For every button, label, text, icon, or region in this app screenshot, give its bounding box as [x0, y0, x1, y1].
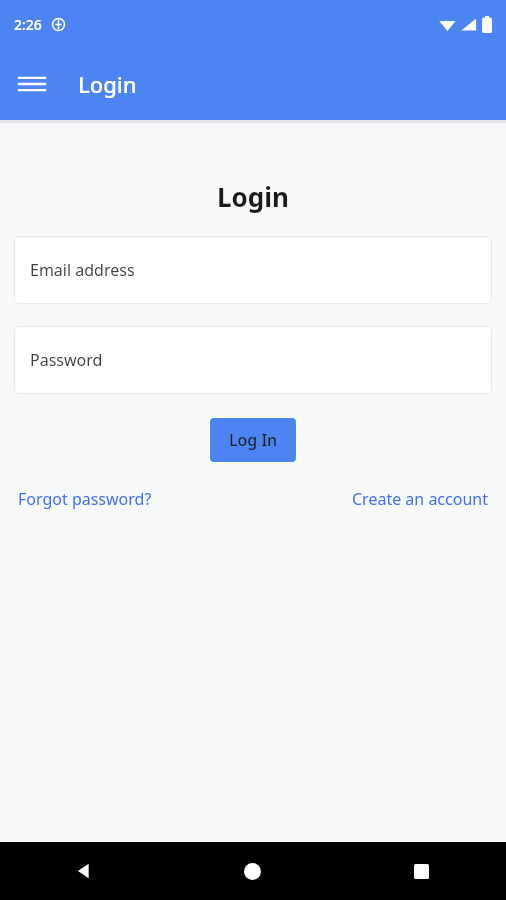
button[interactable]: Password	[14, 326, 492, 394]
button[interactable]: Email address	[14, 236, 492, 304]
staticText: Email address	[30, 259, 135, 281]
staticText: Login	[0, 179, 506, 214]
button[interactable]: Open navigation menu	[8, 60, 56, 108]
button[interactable]: Recent apps	[337, 842, 506, 900]
staticText: Password	[30, 349, 103, 371]
button[interactable]: Forgot password?	[16, 484, 154, 514]
button[interactable]: Log In	[210, 418, 296, 462]
staticText: Login	[78, 69, 137, 99]
button[interactable]: Create an account	[350, 484, 490, 514]
staticText: Log In	[229, 429, 278, 451]
button[interactable]: Back	[0, 842, 168, 900]
staticText: Forgot password?	[18, 488, 152, 510]
button[interactable]: Home	[168, 842, 337, 900]
staticText: Create an account	[352, 488, 488, 510]
staticText: 2:26	[14, 15, 42, 34]
